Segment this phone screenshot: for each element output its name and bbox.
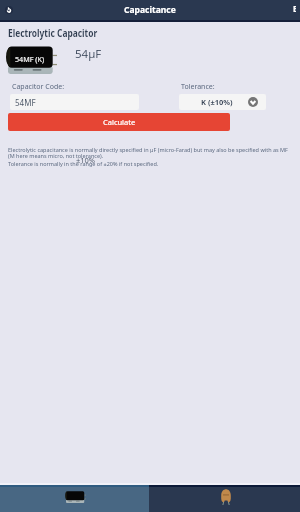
staticText: 54µF xyxy=(75,46,102,62)
staticText: Tolerance: xyxy=(181,82,215,92)
staticText: Capacitance xyxy=(124,4,176,16)
staticText: Tolerance is normally in the range of ±2… xyxy=(8,160,159,167)
staticText: Electrolytic Capacitor xyxy=(8,26,98,40)
staticText: Back xyxy=(293,3,296,17)
staticText: 54MF xyxy=(15,97,36,108)
staticText: Electrolytic capacitance is normally dir… xyxy=(8,146,288,160)
button[interactable]: Electrolytic capacitor xyxy=(0,485,149,512)
button[interactable]: Back xyxy=(0,0,300,20)
staticText: ±10% xyxy=(76,155,96,165)
button[interactable]: Ceramic capacitor xyxy=(149,485,300,512)
staticText: Capacitor Code: xyxy=(12,82,65,92)
button[interactable]: Calculate xyxy=(8,113,230,131)
staticText: K (±10%) xyxy=(201,97,233,107)
button[interactable]: 54MF xyxy=(10,94,139,110)
staticText: 54MF (K) xyxy=(15,54,45,64)
staticText: Calculate xyxy=(103,117,136,127)
button[interactable]: K (±10%) xyxy=(179,94,266,110)
